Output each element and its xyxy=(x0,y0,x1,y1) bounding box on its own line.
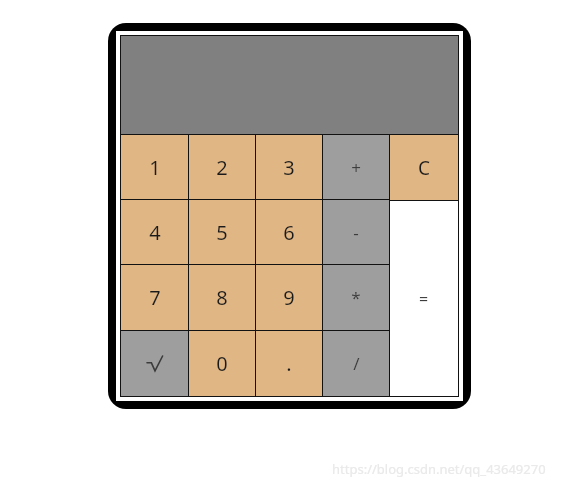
button[interactable]: 1 xyxy=(121,135,188,199)
staticText: 3 xyxy=(283,154,295,181)
staticText: C xyxy=(418,155,431,181)
button[interactable]: 3 xyxy=(256,135,322,199)
staticText: 9 xyxy=(283,284,295,311)
button[interactable]: 5 xyxy=(189,200,255,264)
staticText: 4 xyxy=(149,219,161,246)
button[interactable]: 6 xyxy=(256,200,322,264)
staticText: 2 xyxy=(216,154,228,181)
staticText: 1 xyxy=(149,154,161,181)
button[interactable]: 7 xyxy=(121,265,188,330)
staticText: 5 xyxy=(216,219,228,246)
button[interactable]: 9 xyxy=(256,265,322,330)
button[interactable]: Square root xyxy=(121,331,188,396)
staticText: - xyxy=(353,221,359,244)
button[interactable]: C xyxy=(390,135,458,200)
button[interactable]: . xyxy=(256,331,322,396)
button[interactable]: + xyxy=(323,135,389,199)
staticText: 7 xyxy=(149,284,161,311)
button[interactable]: - xyxy=(323,200,389,264)
button[interactable]: 0 xyxy=(189,331,255,396)
staticText: 8 xyxy=(216,284,228,311)
staticText: 6 xyxy=(283,219,295,246)
staticText: / xyxy=(353,352,360,375)
button[interactable]: / xyxy=(323,331,389,396)
staticText: . xyxy=(286,350,292,377)
button[interactable]: 4 xyxy=(121,200,188,264)
button[interactable]: https://blog.csdn.net/qq_43649270 xyxy=(332,460,546,478)
button[interactable]: 2 xyxy=(189,135,255,199)
button[interactable]: = xyxy=(390,201,458,396)
button[interactable]: * xyxy=(323,265,389,330)
staticText: 0 xyxy=(216,350,228,377)
staticText: = xyxy=(419,288,429,310)
button[interactable]: 8 xyxy=(189,265,255,330)
staticText: + xyxy=(351,156,361,179)
staticText: * xyxy=(351,286,361,309)
